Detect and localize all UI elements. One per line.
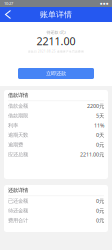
staticText: 5天 bbox=[96, 112, 104, 119]
staticText: 2200元 bbox=[87, 102, 104, 109]
button[interactable]: 立即还款 bbox=[18, 68, 94, 79]
staticText: 0元 bbox=[96, 207, 104, 214]
staticText: 0元 bbox=[96, 197, 104, 204]
staticText: 账单详情 bbox=[40, 10, 72, 19]
staticText: 借款期限 bbox=[8, 112, 28, 119]
staticText: 应还总额 bbox=[8, 151, 28, 158]
staticText: 0天 bbox=[96, 131, 104, 139]
staticText: 10:27 bbox=[4, 1, 13, 6]
staticText: 借款金额 bbox=[8, 103, 28, 109]
staticText: 0元 bbox=[96, 141, 104, 148]
staticText: 费用合计 bbox=[8, 217, 28, 224]
staticText: 立即还款 bbox=[46, 70, 66, 77]
staticText: 2211.00元 bbox=[80, 151, 104, 158]
staticText: 11% bbox=[94, 122, 104, 129]
staticText: 0元 bbox=[96, 217, 104, 224]
staticText: 利率 bbox=[8, 122, 18, 129]
staticText: 已还金额 bbox=[8, 198, 28, 204]
staticText: 借款详情 bbox=[8, 92, 28, 99]
staticText: 还款详情 bbox=[8, 187, 28, 194]
button[interactable] bbox=[0, 7, 16, 22]
staticText: 2211.00 bbox=[36, 34, 75, 48]
staticText: 还款日 2021-08-25 逾期将产生罚息费用 bbox=[28, 50, 84, 53]
staticText: 待还款 (元) bbox=[46, 30, 65, 35]
staticText: 逾期天数 bbox=[8, 132, 28, 138]
staticText: 待还金额 bbox=[8, 207, 28, 214]
staticText: ● ● ● bbox=[100, 2, 108, 5]
staticText: 逾期费 bbox=[8, 141, 23, 148]
